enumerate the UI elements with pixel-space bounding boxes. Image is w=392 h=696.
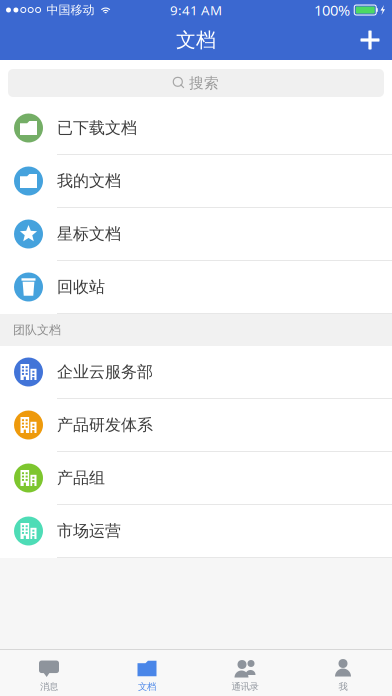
button[interactable]: 消息 [0,650,98,696]
button[interactable]: 我的文档 [0,155,392,208]
staticText: 团队文档 [13,323,61,337]
staticText: 市场运营 [57,521,121,541]
staticText: 已下载文档 [57,118,137,138]
staticText: 星标文档 [57,224,121,244]
staticText: 消息 [40,681,58,692]
staticText: 通讯录 [231,681,258,692]
button[interactable]: 市场运营 [0,505,392,558]
staticText: 企业云服务部 [57,362,153,382]
button[interactable]: 星标文档 [0,208,392,261]
staticText: 回收站 [57,277,105,297]
button[interactable]: 产品组 [0,452,392,505]
button[interactable]: 我 [294,650,392,696]
staticText: 产品研发体系 [57,415,153,435]
staticText: 中国移动 [47,3,95,17]
button[interactable]: 通讯录 [196,650,294,696]
staticText: 9:41 AM [170,1,222,19]
staticText: 产品组 [57,468,105,488]
staticText: 我 [338,681,347,692]
staticText: 文档 [138,681,156,692]
button[interactable]: 产品研发体系 [0,399,392,452]
button[interactable]: New document [348,20,392,60]
button[interactable]: 已下载文档 [0,102,392,155]
button[interactable]: 企业云服务部 [0,346,392,399]
button[interactable]: 文档 [98,650,196,696]
staticText: 文档 [176,28,216,52]
staticText: 我的文档 [57,171,121,191]
staticText: 100% [314,0,350,20]
staticText: 搜索 [189,74,219,92]
button[interactable]: 回收站 [0,261,392,314]
